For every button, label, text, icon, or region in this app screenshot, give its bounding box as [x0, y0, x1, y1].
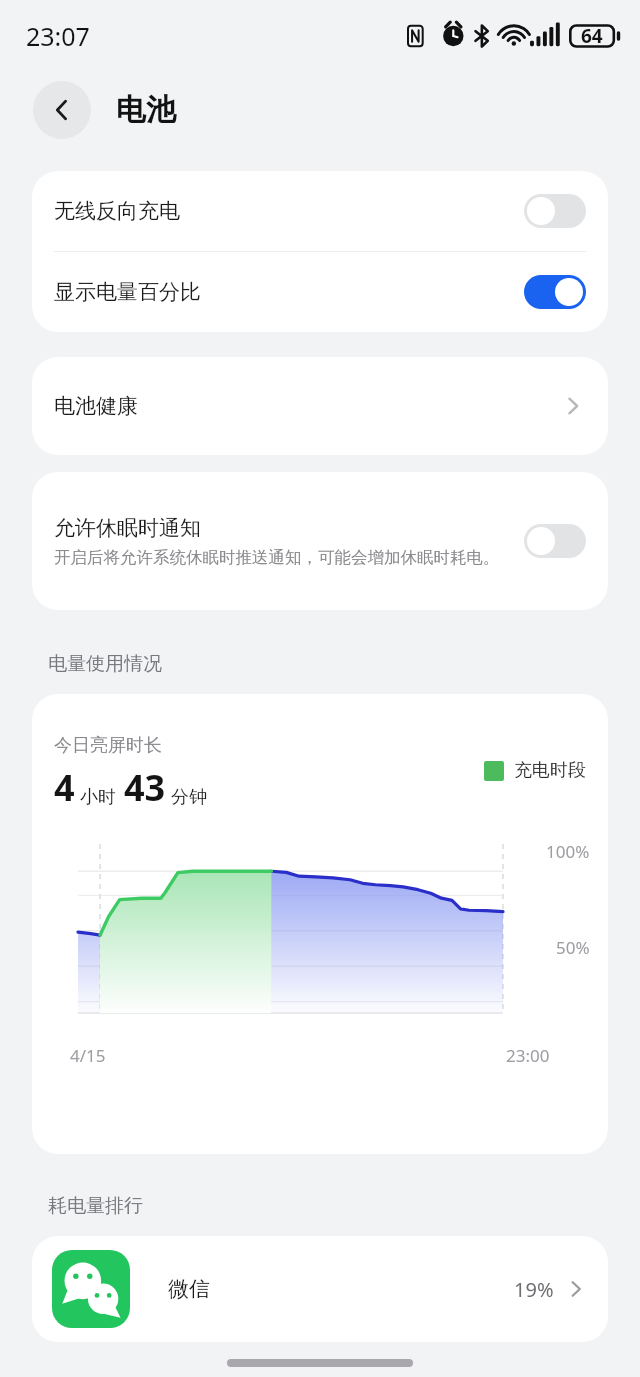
- button[interactable]: 微信: [32, 1236, 608, 1342]
- button[interactable]: Toggle on: [524, 275, 586, 309]
- staticText: 4: [54, 763, 75, 812]
- staticText: 23:07: [26, 19, 90, 53]
- staticText: 19%: [514, 1276, 554, 1303]
- button[interactable]: 无线反向充电: [32, 171, 608, 251]
- staticText: 50%: [556, 936, 590, 959]
- staticText: 开启后将允许系统休眠时推送通知，可能会增加休眠时耗电。: [54, 547, 500, 568]
- button[interactable]: 显示电量百分比: [32, 252, 608, 332]
- staticText: 43: [124, 763, 166, 812]
- staticText: 允许休眠时通知: [54, 515, 201, 541]
- staticText: 4/15: [70, 1044, 106, 1067]
- staticText: 小时: [80, 786, 116, 809]
- staticText: 电池: [116, 91, 176, 129]
- staticText: 电量使用情况: [48, 652, 162, 676]
- staticText: 23:00: [506, 1044, 550, 1067]
- staticText: 耗电量排行: [48, 1194, 143, 1218]
- button[interactable]: 电池健康: [32, 357, 608, 455]
- staticText: 显示电量百分比: [54, 279, 201, 305]
- button[interactable]: Toggle off: [524, 524, 586, 558]
- staticText: 分钟: [171, 786, 207, 809]
- staticText: 电池健康: [54, 393, 138, 419]
- button[interactable]: Toggle off: [524, 194, 586, 228]
- staticText: 今日亮屏时长: [54, 734, 162, 757]
- button[interactable]: Back: [33, 81, 91, 139]
- staticText: 100%: [546, 840, 590, 863]
- staticText: 64: [581, 23, 603, 49]
- staticText: 微信: [168, 1276, 210, 1302]
- button[interactable]: 允许休眠时通知: [32, 472, 608, 610]
- staticText: 无线反向充电: [54, 198, 180, 224]
- staticText: 充电时段: [514, 759, 586, 782]
